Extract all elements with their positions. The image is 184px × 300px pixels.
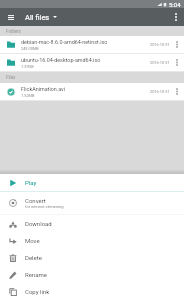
button[interactable]: Item options	[170, 36, 184, 53]
button[interactable]: Rename	[0, 266, 184, 283]
staticText: Move	[25, 237, 40, 244]
staticText: 1.39GB	[21, 64, 34, 69]
button[interactable]: Copy link	[0, 283, 184, 300]
button[interactable]: Move	[0, 232, 184, 249]
staticText: Delete	[25, 254, 42, 261]
staticText: 1.52MB	[21, 93, 35, 98]
staticText: 5:04	[169, 1, 181, 8]
button[interactable]: FlickAnimation.avi	[0, 83, 184, 100]
staticText: 2016-10-31	[150, 60, 170, 65]
button[interactable]: Convert	[0, 192, 184, 214]
staticText: Files	[6, 75, 16, 80]
staticText: Copy link	[25, 288, 50, 295]
button[interactable]: debian-mac-8.6.0-amd64-netinst.iso	[0, 36, 184, 53]
staticText: ubuntu-16.04-desktop-amd64.iso	[21, 57, 101, 63]
staticText: debian-mac-8.6.0-amd64-netinst.iso	[21, 39, 108, 45]
staticText: Rename	[25, 271, 47, 278]
staticText: All files	[25, 13, 50, 22]
staticText: for internet streaming	[25, 204, 64, 209]
staticText: Folders	[6, 29, 21, 34]
staticText: FlickAnimation.avi	[21, 86, 65, 92]
staticText: Play	[25, 179, 37, 186]
button[interactable]: All files	[21, 8, 61, 26]
button[interactable]: More options	[168, 8, 184, 26]
staticText: Download	[25, 220, 52, 227]
button[interactable]: Item options	[170, 54, 184, 71]
staticText: 249.00MB	[21, 46, 39, 51]
staticText: 2016-10-31	[150, 42, 170, 47]
button[interactable]: Delete	[0, 249, 184, 266]
button[interactable]: Item options	[170, 83, 184, 100]
button[interactable]: ubuntu-16.04-desktop-amd64.iso	[0, 54, 184, 71]
button[interactable]: Navigation menu	[0, 8, 21, 26]
staticText: Convert	[25, 197, 46, 204]
staticText: 2016-10-31	[150, 89, 170, 94]
button[interactable]: Play	[0, 174, 184, 191]
button[interactable]: Download	[0, 215, 184, 232]
